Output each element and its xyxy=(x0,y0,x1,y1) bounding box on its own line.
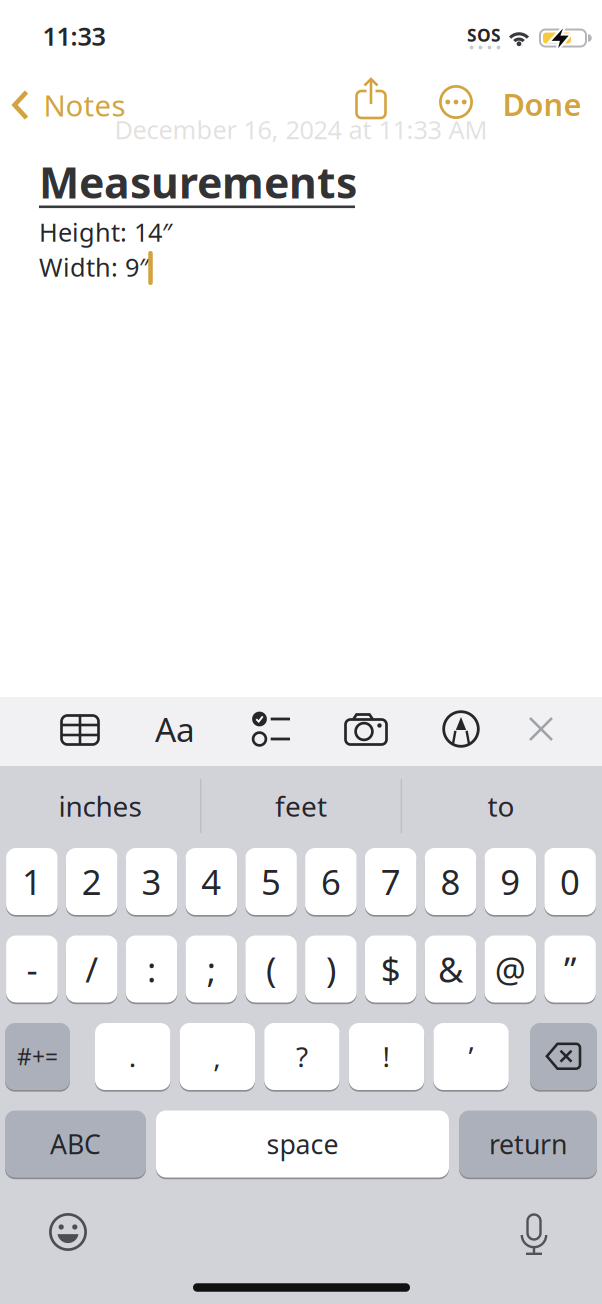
button[interactable]: ) xyxy=(305,934,357,1003)
staticText: 4 xyxy=(201,858,221,904)
button[interactable]: 9 xyxy=(484,847,536,916)
button[interactable]: 6 xyxy=(305,847,357,916)
staticText: 1 xyxy=(22,858,42,904)
staticText: ’ xyxy=(469,1038,474,1075)
button[interactable]: 5 xyxy=(245,847,297,916)
button[interactable]: Text format xyxy=(155,707,195,751)
staticText: - xyxy=(26,946,37,992)
button[interactable]: feet xyxy=(206,770,396,842)
staticText: ) xyxy=(326,946,336,992)
staticText: $ xyxy=(381,946,401,992)
staticText: 5 xyxy=(261,858,281,904)
button[interactable]: ( xyxy=(245,934,297,1003)
button[interactable]: / xyxy=(66,934,117,1003)
staticText: Done xyxy=(502,84,581,124)
button[interactable]: Dismiss keyboard xyxy=(529,717,553,741)
staticText: space xyxy=(266,1126,338,1162)
staticText: : xyxy=(147,946,156,992)
staticText: inches xyxy=(58,787,141,825)
button[interactable]: ” xyxy=(544,934,596,1003)
staticText: 11:33 xyxy=(42,19,105,53)
button[interactable]: $ xyxy=(365,934,416,1003)
button[interactable]: ’ xyxy=(433,1022,509,1091)
button[interactable]: @ xyxy=(484,934,536,1003)
button[interactable]: space xyxy=(156,1109,449,1178)
button[interactable]: Checklist xyxy=(251,712,290,746)
staticText: ! xyxy=(382,1038,390,1075)
button[interactable]: Markup xyxy=(442,710,480,748)
staticText: 6 xyxy=(321,858,341,904)
staticText: 2 xyxy=(82,858,102,904)
button[interactable]: 2 xyxy=(66,847,117,916)
staticText: SOS xyxy=(467,23,501,46)
staticText: Aa xyxy=(155,707,195,751)
button[interactable]: ! xyxy=(349,1022,424,1091)
button[interactable]: ? xyxy=(264,1022,340,1091)
staticText: ” xyxy=(564,946,576,992)
button[interactable]: Insert table xyxy=(60,714,100,746)
button[interactable]: - xyxy=(6,934,58,1003)
button[interactable]: to xyxy=(406,770,596,842)
staticText: Width: 9″ xyxy=(39,250,149,284)
button[interactable]: #+= xyxy=(5,1022,70,1091)
staticText: Notes xyxy=(43,85,125,124)
button[interactable]: 8 xyxy=(425,847,476,916)
staticText: feet xyxy=(275,787,327,825)
button[interactable]: More xyxy=(439,85,473,119)
button[interactable]: Insert photo xyxy=(344,713,388,746)
button[interactable]: 0 xyxy=(544,847,596,916)
staticText: 3 xyxy=(141,858,161,904)
staticText: return xyxy=(489,1126,567,1162)
button[interactable]: Delete xyxy=(530,1022,597,1091)
button[interactable]: Share xyxy=(355,77,386,119)
staticText: / xyxy=(85,946,98,992)
button[interactable]: inches xyxy=(5,770,195,842)
staticText: 8 xyxy=(440,858,460,904)
staticText: & xyxy=(438,946,463,992)
staticText: ( xyxy=(266,946,276,992)
staticText: , xyxy=(213,1038,221,1075)
button[interactable]: ABC xyxy=(5,1109,146,1178)
button[interactable]: ; xyxy=(185,934,237,1003)
staticText: Height: 14″ xyxy=(39,215,172,249)
staticText: #+= xyxy=(17,1041,58,1071)
button[interactable]: Back xyxy=(12,85,125,124)
button[interactable]: & xyxy=(425,934,476,1003)
button[interactable]: . xyxy=(95,1022,170,1091)
button[interactable]: 3 xyxy=(126,847,177,916)
button[interactable]: Dictate xyxy=(520,1213,548,1255)
staticText: Measurements xyxy=(39,154,357,210)
button[interactable]: : xyxy=(126,934,177,1003)
staticText: ; xyxy=(207,946,216,992)
button[interactable]: Done xyxy=(502,84,581,124)
staticText: to xyxy=(487,787,514,825)
staticText: @ xyxy=(495,946,526,992)
button[interactable]: return xyxy=(459,1109,597,1178)
button[interactable]: 1 xyxy=(6,847,58,916)
button[interactable]: Emoji xyxy=(49,1213,87,1251)
button[interactable]: , xyxy=(180,1022,255,1091)
staticText: ? xyxy=(296,1038,308,1075)
staticText: 7 xyxy=(381,858,401,904)
staticText: December 16, 2024 at 11:33 AM xyxy=(114,113,487,146)
staticText: ABC xyxy=(50,1126,101,1162)
button[interactable]: 7 xyxy=(365,847,416,916)
staticText: 0 xyxy=(560,858,580,904)
staticText: . xyxy=(129,1038,137,1075)
staticText: 9 xyxy=(500,858,520,904)
button[interactable]: 4 xyxy=(185,847,237,916)
